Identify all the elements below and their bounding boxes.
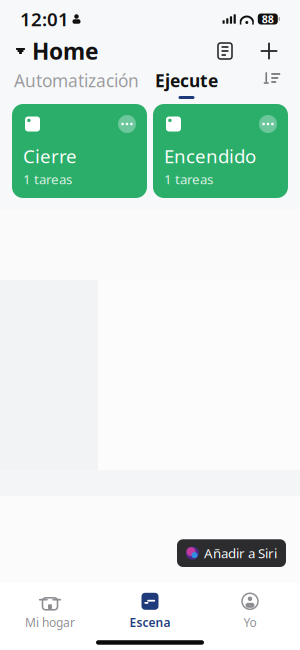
- button[interactable]: Cierre: [12, 104, 147, 198]
- staticText: Automatización: [14, 69, 139, 92]
- button[interactable]: Ordenar: [258, 66, 286, 90]
- staticText: Mi hogar: [25, 614, 75, 630]
- staticText: 1 tareas: [23, 170, 72, 188]
- button[interactable]: Lista: [210, 36, 240, 66]
- staticText: 12:01: [20, 7, 69, 31]
- button[interactable]: Yo: [200, 590, 300, 632]
- button[interactable]: Automatización: [14, 66, 139, 95]
- button[interactable]: Home: [16, 32, 99, 70]
- staticText: Home: [32, 36, 99, 66]
- staticText: Yo: [243, 614, 256, 630]
- button[interactable]: Escena: [100, 590, 200, 632]
- button[interactable]: Encendido: [153, 104, 288, 198]
- button[interactable]: Añadir: [254, 36, 284, 66]
- staticText: 88: [262, 12, 274, 26]
- button[interactable]: Ejecute: [155, 66, 218, 102]
- staticText: Cierre: [23, 143, 77, 168]
- button[interactable]: Añadir a Siri: [177, 539, 286, 567]
- button[interactable]: Más opciones: [259, 115, 277, 133]
- button[interactable]: Más opciones: [118, 115, 136, 133]
- staticText: Encendido: [164, 143, 256, 168]
- staticText: Añadir a Siri: [204, 544, 277, 562]
- staticText: 1 tareas: [164, 170, 213, 188]
- button[interactable]: Mi hogar: [0, 590, 100, 632]
- staticText: Ejecute: [155, 69, 218, 92]
- staticText: Escena: [129, 614, 170, 630]
